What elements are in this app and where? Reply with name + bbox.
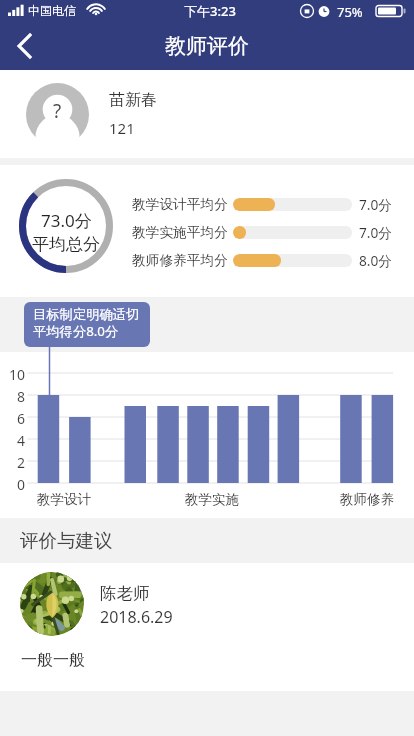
staticText: 评价与建议 bbox=[20, 529, 113, 552]
button[interactable]: 陈老师 bbox=[0, 563, 414, 736]
staticText: 2 bbox=[1, 453, 25, 469]
staticText: 教学实施平均分 bbox=[132, 224, 229, 241]
staticText: 教学设计平均分 bbox=[132, 196, 229, 213]
staticText: 73.0分 bbox=[41, 209, 92, 232]
staticText: ? bbox=[53, 98, 62, 124]
staticText: 中国电信 bbox=[28, 3, 76, 18]
button[interactable]: ? bbox=[0, 70, 414, 158]
staticText: 10 bbox=[1, 365, 25, 381]
button[interactable]: Back bbox=[0, 22, 48, 70]
staticText: 4 bbox=[1, 431, 25, 447]
staticText: 陈老师 bbox=[100, 583, 150, 604]
staticText: 7.0分 bbox=[359, 223, 393, 242]
staticText: 教师修养 bbox=[327, 491, 407, 508]
staticText: 8.0分 bbox=[359, 251, 393, 270]
staticText: 2018.6.29 bbox=[100, 606, 173, 628]
staticText: 苗新春 bbox=[109, 90, 157, 110]
staticText: 121 bbox=[109, 118, 135, 138]
staticText: 一般一般 bbox=[21, 650, 85, 670]
staticText: 平均总分 bbox=[32, 234, 100, 255]
staticText: 8 bbox=[1, 387, 25, 403]
staticText: 目标制定明确适切 平均得分8.0分 bbox=[33, 306, 140, 340]
staticText: 7.0分 bbox=[359, 195, 393, 214]
staticText: 75% bbox=[337, 3, 363, 21]
staticText: 6 bbox=[1, 409, 25, 425]
staticText: 教师修养平均分 bbox=[132, 252, 229, 269]
staticText: 0 bbox=[1, 475, 25, 491]
staticText: 教学实施 bbox=[172, 491, 252, 508]
staticText: 下午3:23 bbox=[184, 2, 236, 20]
staticText: 教学设计 bbox=[24, 491, 104, 508]
staticText: 教师评价 bbox=[165, 33, 249, 59]
